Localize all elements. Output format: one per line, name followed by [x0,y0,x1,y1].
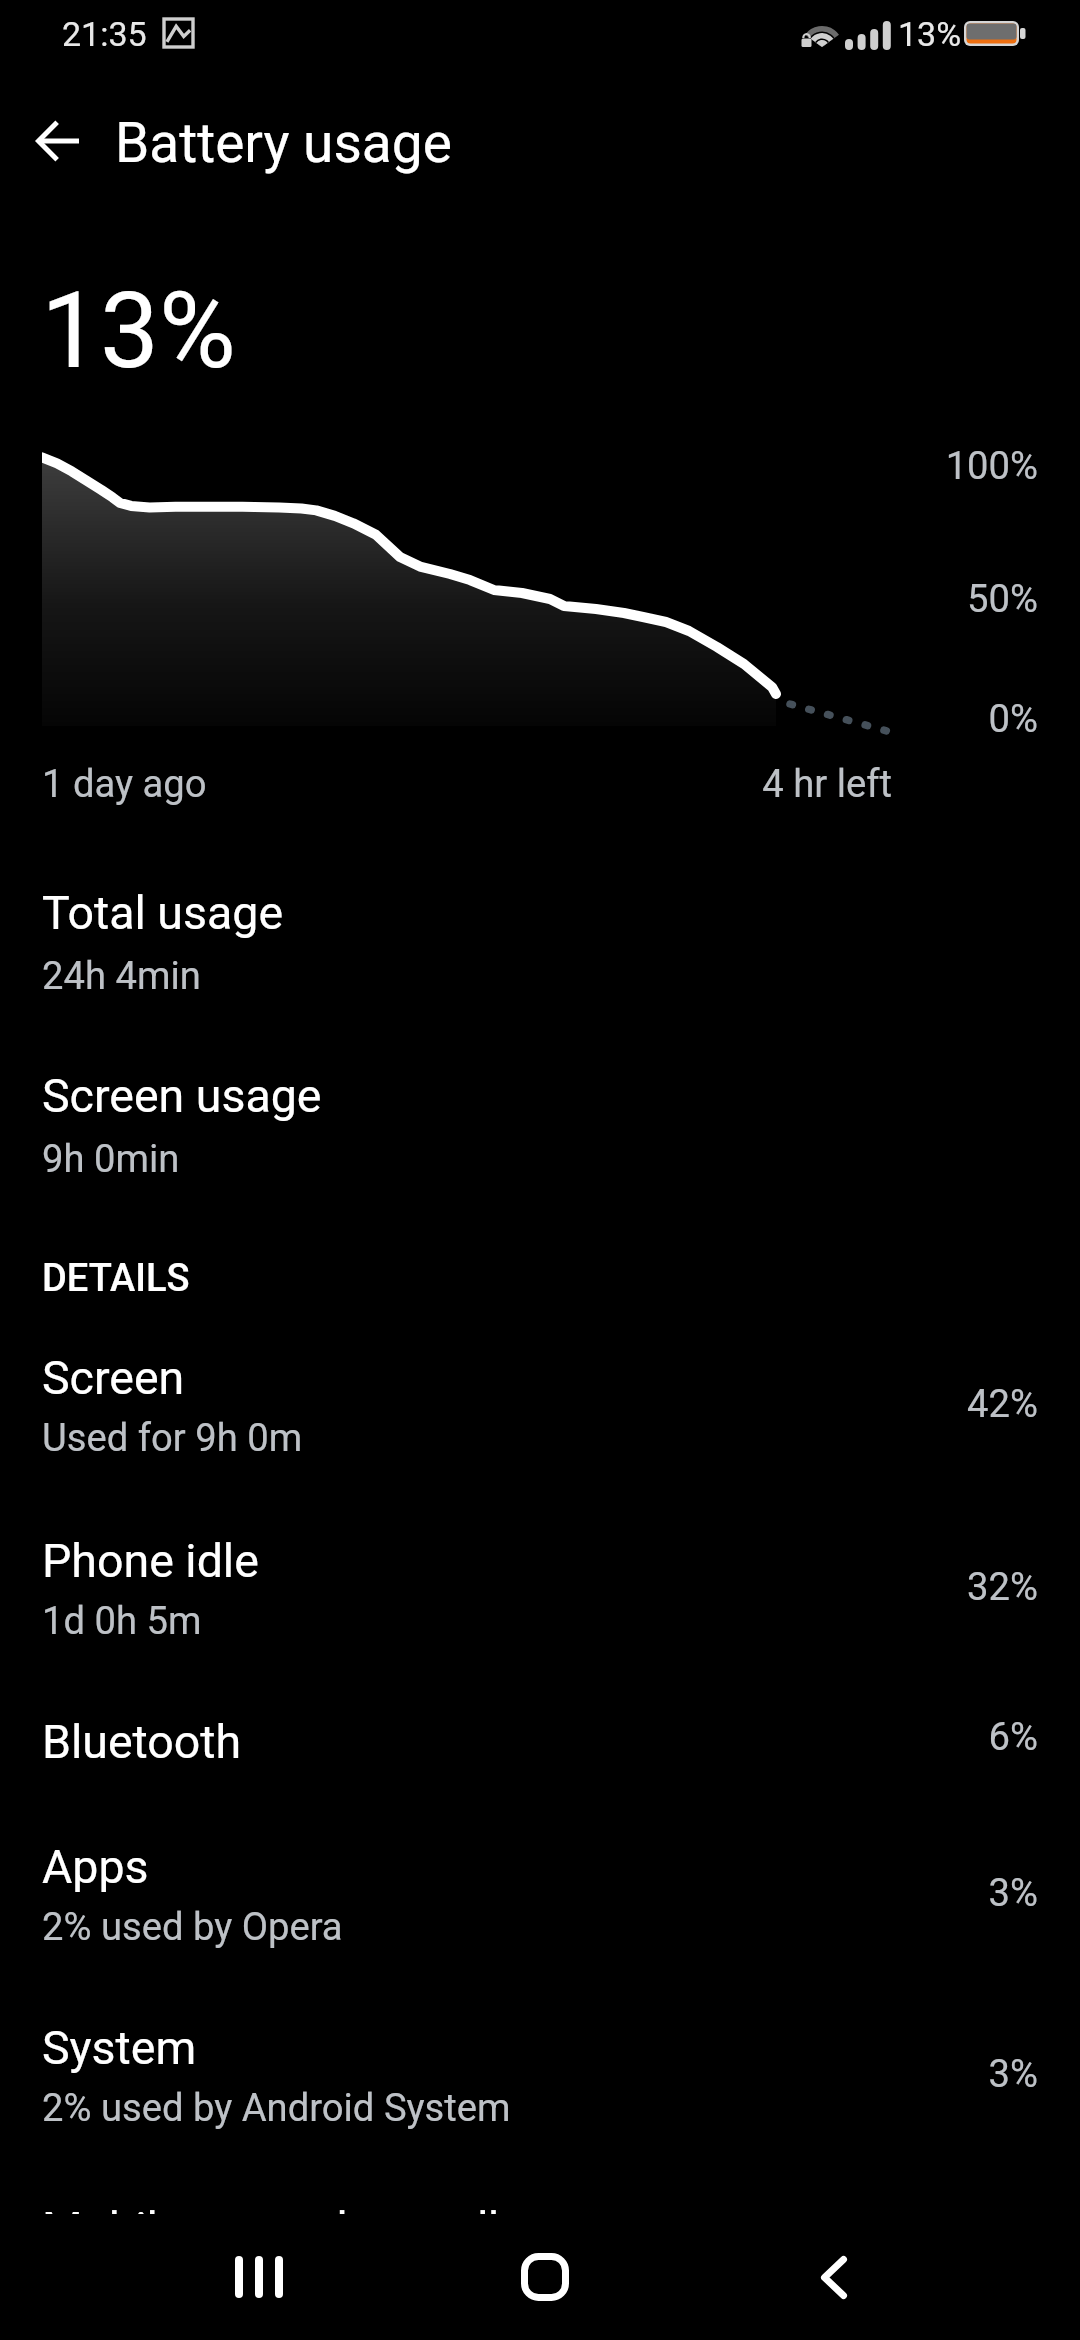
staticText: 42% [0,1382,1038,1427]
staticText: 24h 4min [42,954,201,999]
staticText: 0% [0,697,1038,742]
staticText: 6% [0,1715,1038,1760]
button[interactable]: Phone idle [0,1508,1080,1646]
staticText: 13% [41,270,236,393]
staticText: 9h 0min [42,1137,180,1182]
staticText: 21:35 [62,14,147,54]
button[interactable]: Bluetooth [0,1689,1080,1789]
staticText: 1d 0h 5m [42,1599,202,1644]
staticText: 32% [0,1565,1038,1610]
button[interactable]: Home [465,2214,625,2340]
staticText: Bluetooth [42,1715,242,1769]
staticText: 13% [898,14,962,54]
staticText: 4 hr left [0,762,892,807]
button[interactable]: Recent apps [181,2214,341,2340]
staticText: 100% [0,444,1038,489]
staticText: 3% [0,1871,1038,1916]
staticText: Mobile network standby [42,2202,537,2256]
staticText: Used for 9h 0m [42,1416,303,1461]
button[interactable]: Screen [0,1325,1080,1463]
staticText: Battery usage [115,111,452,175]
staticText: 3% [0,2052,1038,2097]
button[interactable]: Back [10,93,106,189]
staticText: 1 day ago [42,762,207,807]
staticText: 2% used by Android System [42,2086,511,2131]
button[interactable]: System [0,1995,1080,2133]
staticText: 50% [0,577,1038,622]
button[interactable]: Screen usage [0,1043,1080,1181]
button[interactable]: Mobile network standby [0,2176,1080,2314]
button[interactable]: Back [754,2214,914,2340]
staticText: 1% [0,2233,1038,2278]
button[interactable]: Total usage [0,860,1080,998]
staticText: Phone idle [42,1534,259,1588]
staticText: 2% used by Opera [42,1905,343,1950]
staticText: System [42,2021,197,2075]
staticText: Screen usage [42,1069,322,1123]
staticText: Total usage [42,886,284,940]
staticText: Apps [42,1840,149,1894]
staticText: Screen [42,1351,185,1405]
button[interactable]: Apps [0,1814,1080,1952]
staticText: DETAILS [42,1256,190,1301]
